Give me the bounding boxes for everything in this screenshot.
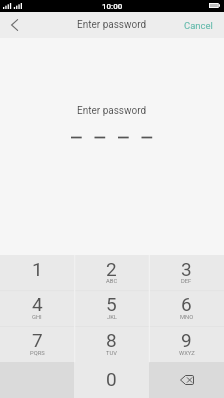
staticText: Cancel	[184, 20, 213, 31]
button[interactable]: Cancel	[172, 12, 224, 38]
staticText: 5	[106, 293, 117, 315]
button[interactable]: 1	[0, 255, 74, 290]
staticText: 1	[32, 258, 43, 280]
staticText: TUV	[106, 350, 117, 357]
staticText: 4	[32, 293, 43, 315]
staticText: 9	[181, 329, 192, 351]
staticText: 6	[181, 293, 192, 315]
staticText: ABC	[106, 278, 118, 285]
button[interactable]: 9	[149, 326, 224, 362]
staticText: 10:00	[102, 2, 123, 11]
staticText: DEF	[181, 278, 192, 285]
staticText: 8	[106, 329, 117, 351]
staticText: 7	[32, 329, 43, 351]
button[interactable]: 5	[74, 290, 149, 326]
button[interactable]: 6	[149, 290, 224, 326]
button[interactable]: 8	[74, 326, 149, 362]
button[interactable]: Backspace	[149, 362, 224, 398]
staticText: MNO	[180, 314, 194, 321]
staticText: WXYZ	[179, 350, 195, 357]
button[interactable]: 4	[0, 290, 74, 326]
staticText: GHI	[32, 314, 42, 321]
button[interactable]: 2	[74, 255, 149, 290]
staticText: PQRS	[30, 350, 45, 357]
button[interactable]: 0	[74, 362, 149, 398]
button[interactable]: Back	[0, 12, 28, 38]
staticText: 0	[106, 368, 117, 390]
button[interactable]: 7	[0, 326, 74, 362]
staticText: 3	[181, 258, 192, 280]
staticText: Enter password	[77, 105, 147, 117]
staticText: 2	[106, 258, 117, 280]
button[interactable]: 3	[149, 255, 224, 290]
staticText: Enter password	[77, 19, 147, 31]
staticText: JKL	[107, 314, 117, 321]
